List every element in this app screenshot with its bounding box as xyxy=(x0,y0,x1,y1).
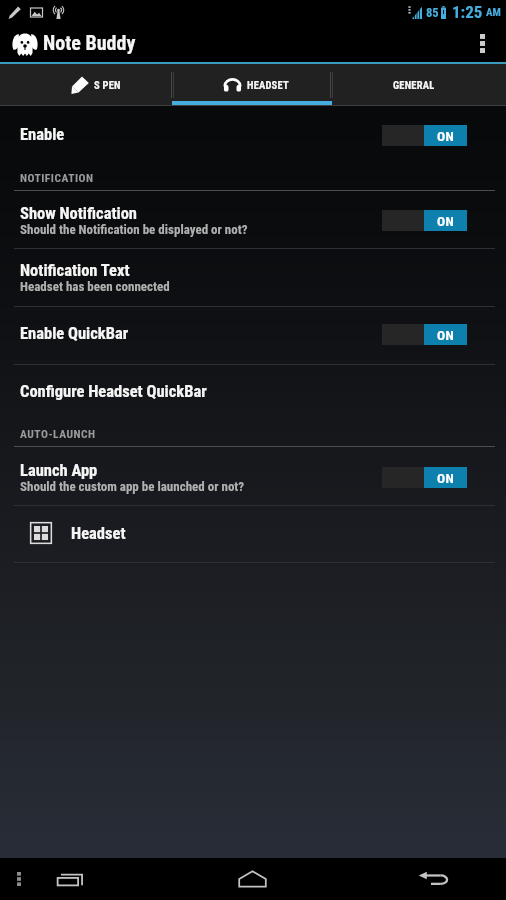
staticText: S PEN xyxy=(94,79,121,91)
button[interactable] xyxy=(0,248,506,306)
button[interactable]: Home xyxy=(222,858,282,900)
button[interactable] xyxy=(0,446,506,505)
staticText: NOTIFICATION xyxy=(20,171,94,184)
button[interactable] xyxy=(0,106,506,190)
button[interactable]: Recents xyxy=(45,858,97,900)
staticText: Note Buddy xyxy=(43,31,136,54)
button[interactable]: GENERAL xyxy=(332,64,506,106)
button[interactable] xyxy=(0,505,506,562)
button[interactable]: Toggle xyxy=(382,125,467,146)
button[interactable]: Back xyxy=(404,858,464,900)
button[interactable]: S PEN xyxy=(0,64,172,106)
staticText: HEADSET xyxy=(247,79,289,91)
button[interactable] xyxy=(0,306,506,364)
staticText: Notification Text xyxy=(20,261,130,280)
staticText: Headset has been connected xyxy=(20,279,170,294)
staticText: AM xyxy=(486,6,501,19)
staticText: Headset xyxy=(71,524,126,543)
button[interactable]: Menu xyxy=(2,858,36,900)
staticText: ON xyxy=(437,128,455,144)
staticText: AUTO-LAUNCH xyxy=(20,427,96,440)
staticText: Enable xyxy=(20,125,65,144)
staticText: Should the custom app be launched or not… xyxy=(20,479,245,494)
button[interactable]: HEADSET xyxy=(172,64,332,106)
button[interactable]: Toggle xyxy=(382,467,467,488)
button[interactable]: Toggle xyxy=(382,210,467,231)
staticText: ON xyxy=(437,470,455,486)
staticText: ON xyxy=(437,327,455,343)
staticText: Show Notification xyxy=(20,204,137,223)
staticText: Should the Notification be displayed or … xyxy=(20,222,248,237)
staticText: Enable QuickBar xyxy=(20,324,129,343)
staticText: Configure Headset QuickBar xyxy=(20,382,207,401)
staticText: 1:25 xyxy=(452,2,483,22)
staticText: 85 xyxy=(426,5,439,20)
staticText: ON xyxy=(437,213,455,229)
staticText: GENERAL xyxy=(393,79,435,91)
button[interactable]: Toggle xyxy=(382,324,467,345)
button[interactable] xyxy=(0,190,506,248)
button[interactable]: More options xyxy=(458,24,506,62)
button[interactable] xyxy=(0,364,506,446)
staticText: Launch App xyxy=(20,461,98,480)
